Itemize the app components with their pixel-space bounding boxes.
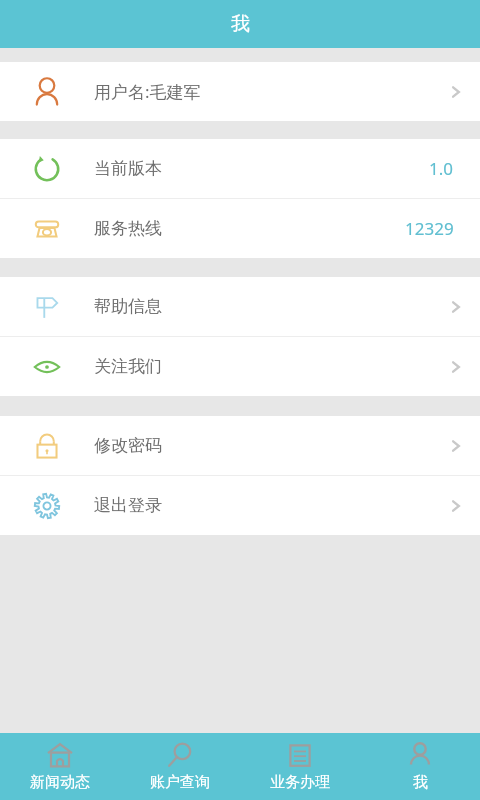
staticText: 修改密码: [94, 435, 162, 456]
button[interactable]: 账户查询: [120, 733, 240, 800]
staticText: 新闻动态: [30, 773, 90, 792]
staticText: 账户查询: [150, 773, 210, 792]
button[interactable]: 帮助信息: [0, 277, 480, 336]
staticText: 业务办理: [270, 773, 330, 792]
button[interactable]: 修改密码: [0, 416, 480, 475]
button[interactable]: 我: [360, 733, 480, 800]
staticText: 服务热线: [94, 218, 162, 239]
staticText: 退出登录: [94, 495, 162, 516]
button[interactable]: 退出登录: [0, 476, 480, 535]
staticText: 用户名:毛建军: [94, 80, 201, 103]
staticText: 关注我们: [94, 356, 162, 377]
button[interactable]: 用户名:毛建军: [0, 62, 480, 121]
button[interactable]: 关注我们: [0, 337, 480, 396]
button[interactable]: 服务热线: [0, 199, 480, 258]
staticText: 我: [413, 773, 428, 792]
staticText: 当前版本: [94, 158, 162, 179]
staticText: 我: [231, 12, 250, 36]
staticText: 帮助信息: [94, 296, 162, 317]
button[interactable]: 业务办理: [240, 733, 360, 800]
staticText: 1.0: [429, 157, 454, 180]
staticText: 12329: [405, 217, 454, 240]
button[interactable]: 新闻动态: [0, 733, 120, 800]
button[interactable]: 当前版本: [0, 139, 480, 198]
